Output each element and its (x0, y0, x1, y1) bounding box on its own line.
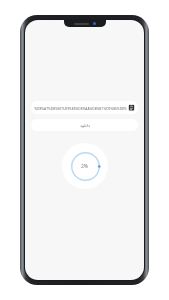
button[interactable]: Download progress 2 percent (62, 143, 108, 189)
staticText: 2% (81, 163, 89, 170)
staticText: دانلود (80, 123, 90, 128)
button[interactable]: Paste link (128, 104, 135, 111)
button[interactable]: دانلود (31, 119, 138, 131)
staticText: %D8%A7%DB%8C%D9%86%D8%AA%D8%B1%D9%86%D8%… (34, 106, 127, 110)
button[interactable]: %D8%A7%DB%8C%D9%86%D8%AA%D8%B1%D9%86%D8%… (31, 101, 138, 114)
